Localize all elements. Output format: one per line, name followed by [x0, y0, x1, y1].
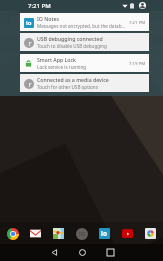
- button[interactable]: io: [20, 13, 149, 31]
- staticText: Google: [10, 14, 31, 22]
- button[interactable]: Home: [68, 244, 96, 261]
- staticText: Lock service is running: [37, 64, 87, 70]
- button[interactable]: Gmail: [28, 226, 43, 241]
- button[interactable]: Back: [40, 244, 68, 261]
- staticText: Connected as a media device: [37, 76, 109, 83]
- button[interactable]: Smart App Lock: [20, 54, 149, 72]
- button[interactable]: Recents: [96, 244, 124, 261]
- staticText: Touch for other USB options: [37, 84, 98, 90]
- staticText: IO Notes: [37, 15, 59, 22]
- staticText: USB debugging connected: [37, 35, 103, 42]
- staticText: Touch to disable USB debugging: [37, 43, 107, 49]
- staticText: 7:19 PM: [129, 60, 146, 66]
- staticText: io: [26, 19, 32, 27]
- button[interactable]: Account: [139, 2, 146, 9]
- staticText: io: [101, 229, 108, 238]
- button[interactable]: All apps: [74, 226, 89, 241]
- staticText: Messages not encrypted, but the database…: [37, 23, 127, 29]
- button[interactable]: USB debugging connected: [20, 33, 149, 51]
- staticText: 7:21 PM: [28, 2, 51, 10]
- staticText: Smart App Lock: [37, 56, 76, 63]
- button[interactable]: Chrome: [5, 226, 20, 241]
- button[interactable]: IO: [97, 226, 112, 241]
- button[interactable]: Google: [4, 11, 150, 24]
- staticText: 7:21 PM: [129, 19, 146, 25]
- button[interactable]: YouTube: [120, 226, 135, 241]
- button[interactable]: Connected as a media device: [20, 74, 149, 92]
- button[interactable]: Maps: [51, 226, 66, 241]
- button[interactable]: Photos: [143, 226, 158, 241]
